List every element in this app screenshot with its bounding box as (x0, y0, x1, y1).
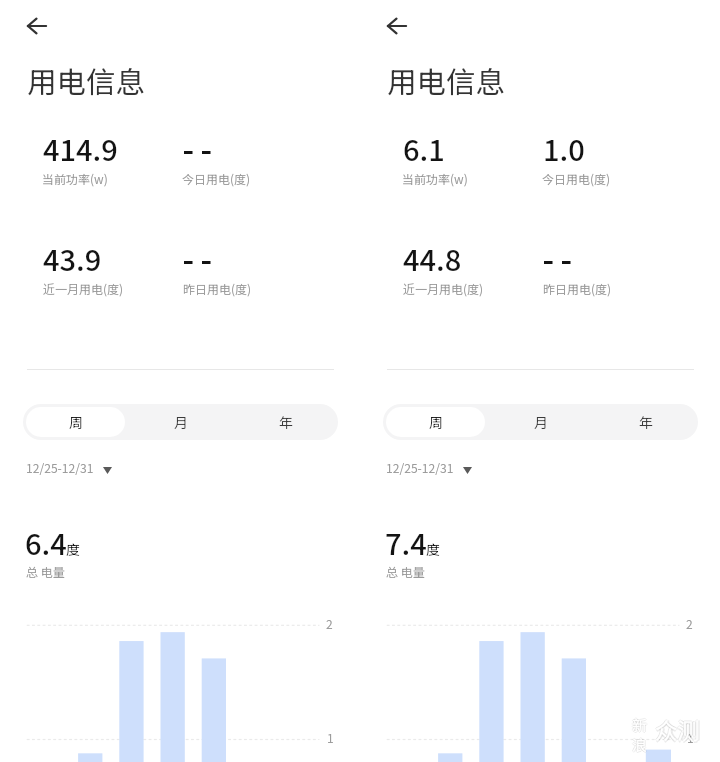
staticText: 1.0 (543, 127, 585, 169)
staticText: 1 (687, 729, 694, 746)
staticText: 度 (66, 539, 80, 559)
staticText: 6.4 (25, 521, 67, 563)
button[interactable]: 月 (131, 407, 230, 437)
staticText: 月 (174, 412, 188, 432)
staticText: 2 (326, 615, 333, 632)
staticText: 7.4 (385, 521, 427, 563)
staticText: 今日用电(度) (182, 170, 251, 187)
button[interactable]: 年 (236, 407, 335, 437)
staticText: 周 (429, 412, 443, 432)
staticText: 月 (534, 412, 548, 432)
staticText: 44.8 (403, 237, 462, 279)
button[interactable]: 12/25-12/31 (26, 459, 110, 477)
staticText: 年 (279, 412, 293, 432)
staticText: 新 浪 (631, 714, 646, 755)
staticText: 43.9 (43, 237, 102, 279)
staticText: 周 (69, 412, 83, 432)
staticText: 1 (327, 729, 334, 746)
staticText: 6.1 (403, 127, 445, 169)
staticText: 今日用电(度) (542, 170, 611, 187)
staticText: 众测 (657, 713, 702, 745)
staticText: 用电信息 (27, 59, 146, 102)
staticText: 总 电量 (386, 563, 425, 580)
staticText: 新 浪 (632, 714, 647, 755)
staticText: 昨日用电(度) (183, 280, 252, 297)
staticText: 新 浪 (632, 715, 647, 756)
button[interactable]: 12/25-12/31 (386, 459, 470, 477)
staticText: 度 (426, 539, 440, 559)
button[interactable]: Back (19, 8, 55, 44)
staticText: 新 浪 (632, 713, 647, 754)
button[interactable]: 年 (596, 407, 695, 437)
staticText: 众测 (654, 713, 699, 745)
staticText: 年 (639, 412, 653, 432)
staticText: 12/25-12/31 (26, 459, 94, 477)
staticText: 新 浪 (633, 714, 648, 755)
button[interactable]: 周 (386, 407, 485, 437)
staticText: 12/25-12/31 (386, 459, 454, 477)
staticText: 近一月用电(度) (403, 280, 484, 297)
staticText: 众测 (655, 713, 700, 745)
staticText: 当前功率(w) (402, 170, 468, 187)
staticText: 昨日用电(度) (543, 280, 612, 297)
staticText: 众测 (655, 715, 700, 747)
staticText: 当前功率(w) (42, 170, 108, 187)
staticText: 近一月用电(度) (43, 280, 124, 297)
button[interactable]: 月 (491, 407, 590, 437)
staticText: 众测 (655, 712, 700, 744)
staticText: 用电信息 (387, 59, 506, 102)
staticText: 2 (686, 615, 693, 632)
button[interactable]: 周 (26, 407, 125, 437)
staticText: 414.9 (43, 127, 118, 169)
button[interactable]: Back (379, 8, 415, 44)
staticText: 总 电量 (26, 563, 65, 580)
